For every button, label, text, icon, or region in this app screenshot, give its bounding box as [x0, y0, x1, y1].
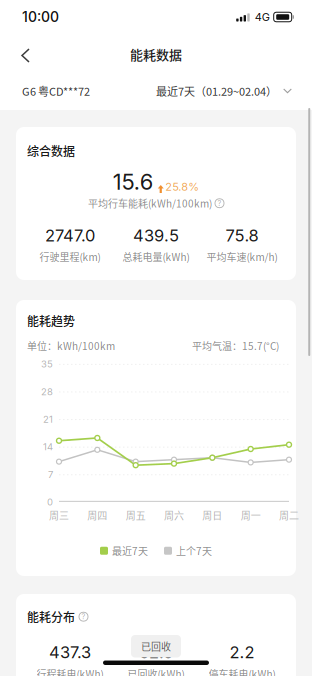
staticText: 单位：kWh/100km: [27, 338, 115, 353]
staticText: 周五: [126, 508, 146, 522]
staticText: 7: [48, 469, 53, 480]
staticText: 停车耗电(kWh): [208, 666, 275, 676]
staticText: 2747.0: [45, 225, 95, 245]
staticText: 平均行车能耗(kWh/100km): [88, 196, 212, 210]
staticText: 2.2: [229, 642, 254, 662]
staticText: 总耗电量(kWh): [122, 249, 189, 264]
staticText: 439.5: [133, 225, 179, 245]
staticText: ?: [81, 612, 85, 621]
staticText: 上个7天: [176, 543, 212, 558]
staticText: 21: [43, 414, 53, 425]
button[interactable]: 最近7天（01.29~02.04）: [156, 78, 292, 104]
staticText: 周三: [49, 508, 69, 522]
staticText: 周二: [279, 508, 299, 522]
staticText: 437.3: [49, 642, 91, 662]
staticText: 已回收: [141, 639, 171, 653]
staticText: 能耗分布: [27, 608, 75, 625]
staticText: 周日: [202, 508, 222, 522]
button[interactable]: Back: [0, 34, 46, 72]
staticText: 25.8%: [165, 180, 199, 193]
staticText: G6 粤CD***72: [22, 83, 90, 99]
staticText: 综合数据: [27, 142, 75, 159]
staticText: 28: [41, 386, 53, 397]
staticText: 平均气温：15.7(°C): [192, 338, 279, 353]
staticText: ?: [217, 199, 221, 208]
staticText: 行驶里程(km): [39, 249, 100, 264]
staticText: 15.6: [113, 168, 154, 195]
staticText: 14: [43, 441, 53, 453]
staticText: 能耗趋势: [27, 312, 75, 329]
staticText: 最近7天（01.29~02.04）: [156, 83, 277, 99]
staticText: 周四: [87, 508, 107, 522]
staticText: 62.0: [139, 642, 173, 662]
staticText: 75.8: [225, 225, 258, 245]
staticText: 35: [41, 358, 53, 370]
staticText: 平均车速(km/h): [206, 249, 277, 264]
staticText: 周六: [164, 508, 184, 522]
button[interactable]: G6 粤CD***72: [22, 78, 90, 104]
staticText: 最近7天: [112, 543, 148, 558]
staticText: 行程耗电(kWh): [36, 666, 103, 676]
staticText: 周一: [241, 508, 261, 522]
staticText: 0: [47, 496, 53, 508]
staticText: 10:00: [22, 8, 59, 25]
staticText: 4G: [255, 10, 270, 24]
staticText: 能耗数据: [130, 45, 182, 63]
staticText: 已回收(kWh): [127, 666, 184, 676]
